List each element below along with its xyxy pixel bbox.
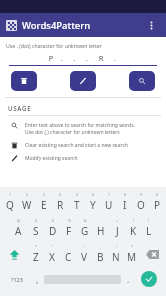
- staticText: S: [33, 224, 39, 238]
- staticText: 3: [43, 192, 46, 197]
- button[interactable]: 6: [85, 189, 101, 215]
- button[interactable]: 7: [101, 189, 117, 215]
- staticText: F: [66, 224, 72, 238]
- staticText: C: [65, 250, 72, 264]
- staticText: I: [123, 198, 127, 212]
- staticText: ,: [36, 274, 39, 285]
- staticText: #: [35, 218, 38, 223]
- staticText: $: [52, 218, 55, 223]
- button[interactable]: ": [44, 241, 60, 267]
- staticText: N: [112, 250, 120, 264]
- staticText: U: [105, 198, 113, 212]
- staticText: ): [148, 218, 150, 223]
- button[interactable]: 0: [149, 189, 165, 215]
- button[interactable]: %: [61, 215, 77, 241]
- staticText: K: [130, 224, 137, 238]
- button[interactable]: 1: [1, 189, 18, 215]
- staticText: E: [41, 198, 47, 212]
- staticText: X: [49, 250, 55, 264]
- staticText: 0: [156, 192, 159, 197]
- button[interactable]: Search: [129, 71, 155, 91]
- button[interactable]: @: [10, 215, 27, 241]
- staticText: 4: [59, 192, 62, 197]
- staticText: 1: [9, 192, 12, 197]
- staticText: ?123: [11, 276, 23, 283]
- staticText: Clear existing search and start a new se…: [25, 142, 128, 149]
- button[interactable]: Period: [121, 267, 135, 291]
- button[interactable]: #: [27, 215, 44, 241]
- button[interactable]: ): [141, 215, 157, 241]
- staticText: B: [97, 250, 104, 264]
- button[interactable]: ?: [124, 241, 140, 267]
- staticText: R: [57, 198, 64, 212]
- staticText: *: [35, 244, 37, 249]
- staticText: 5: [76, 192, 79, 197]
- staticText: Modify existing search: [25, 155, 78, 162]
- button[interactable]: *: [27, 241, 44, 267]
- staticText: .: [127, 274, 130, 285]
- staticText: Enter text above to search for matching …: [25, 122, 135, 136]
- staticText: A: [15, 224, 22, 238]
- staticText: :: [84, 244, 85, 249]
- staticText: T: [74, 198, 80, 212]
- staticText: %: [68, 218, 71, 223]
- staticText: G: [81, 224, 89, 238]
- staticText: D: [49, 224, 57, 238]
- staticText: Y: [90, 198, 96, 212]
- button[interactable]: +: [109, 215, 125, 241]
- button[interactable]: More options: [142, 16, 160, 34]
- button[interactable]: Clear existing search and start a new se…: [0, 136, 166, 149]
- staticText: 8: [124, 192, 127, 197]
- button[interactable]: 5: [69, 189, 85, 215]
- button[interactable]: Modify existing search: [0, 149, 166, 162]
- button[interactable]: Enter text above to search for matching …: [0, 116, 166, 136]
- staticText: ": [51, 244, 53, 249]
- button[interactable]: Comma: [30, 267, 44, 291]
- staticText: 2: [26, 192, 29, 197]
- button[interactable]: -: [93, 215, 109, 241]
- staticText: &: [84, 218, 87, 223]
- staticText: 6: [92, 192, 95, 197]
- staticText: (: [133, 218, 135, 223]
- staticText: Words4Pattern: [22, 19, 91, 32]
- staticText: M: [127, 250, 137, 264]
- button[interactable]: Shift: [1, 241, 27, 267]
- button[interactable]: Backspace: [140, 241, 165, 267]
- staticText: -: [100, 218, 102, 223]
- button[interactable]: 2: [18, 189, 35, 215]
- staticText: Q: [6, 198, 14, 212]
- button[interactable]: (: [125, 215, 141, 241]
- button[interactable]: Clear search: [11, 71, 37, 91]
- staticText: V: [81, 250, 87, 264]
- staticText: @: [17, 218, 21, 223]
- staticText: P: [154, 198, 161, 212]
- staticText: Use . (dot) character for unknown letter: [6, 42, 102, 49]
- staticText: P . . . R .: [9, 53, 157, 63]
- staticText: 7: [108, 192, 111, 197]
- staticText: W: [22, 198, 32, 212]
- button[interactable]: ': [60, 241, 76, 267]
- button[interactable]: 4: [52, 189, 69, 215]
- staticText: USAGE: [8, 104, 32, 112]
- button[interactable]: $: [44, 215, 61, 241]
- button[interactable]: Enter: [141, 271, 157, 287]
- staticText: H: [97, 224, 105, 238]
- button[interactable]: 8: [117, 189, 133, 215]
- button[interactable]: Edit search: [70, 71, 96, 91]
- button[interactable]: &: [77, 215, 93, 241]
- button[interactable]: !: [108, 241, 124, 267]
- staticText: 9: [140, 192, 143, 197]
- staticText: L: [146, 224, 152, 238]
- button[interactable]: 9: [133, 189, 149, 215]
- button[interactable]: :: [76, 241, 92, 267]
- staticText: ?: [131, 244, 133, 249]
- button[interactable]: ;: [92, 241, 108, 267]
- button[interactable]: 3: [35, 189, 52, 215]
- staticText: J: [116, 224, 119, 238]
- staticText: ;: [100, 244, 101, 249]
- button[interactable]: ?123: [3, 267, 30, 291]
- staticText: ': [68, 244, 69, 249]
- staticText: !: [116, 244, 117, 249]
- staticText: O: [137, 198, 145, 212]
